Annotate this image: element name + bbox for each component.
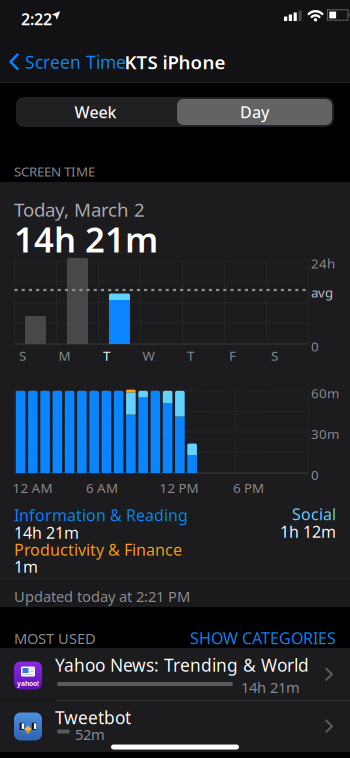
staticText: 52m	[75, 724, 105, 744]
staticText: 0	[311, 466, 319, 484]
staticText: T	[187, 347, 194, 364]
staticText: Week	[74, 101, 116, 123]
staticText: 0	[311, 337, 319, 355]
staticText: F	[229, 347, 236, 364]
staticText: Yahoo News: Trending & World	[55, 653, 309, 676]
staticText: 6 AM	[86, 479, 118, 497]
button[interactable]: yahoo!	[0, 648, 350, 700]
staticText: W	[142, 347, 154, 364]
staticText: 1m	[14, 556, 38, 577]
button[interactable]: Week	[17, 97, 174, 127]
staticText: SCREEN TIME	[14, 162, 95, 180]
staticText: S	[19, 347, 26, 364]
staticText: 24h	[311, 254, 335, 272]
staticText: 14h 21m	[14, 522, 79, 543]
button[interactable]: Back	[9, 51, 126, 73]
staticText: avg	[311, 283, 333, 301]
staticText: T	[103, 347, 110, 364]
button[interactable]: Day	[177, 99, 332, 125]
button[interactable]: SHOW CATEGORIES	[156, 627, 336, 649]
button[interactable]: Tweetbot	[0, 700, 350, 752]
staticText: KTS iPhone	[124, 50, 225, 74]
staticText: 2:22	[21, 8, 52, 30]
staticText: Information & Reading	[14, 504, 188, 526]
staticText: Social	[292, 503, 336, 525]
staticText: SHOW CATEGORIES	[190, 627, 336, 649]
staticText: Day	[240, 101, 269, 123]
staticText: Today, March 2	[14, 197, 145, 222]
staticText: 6 PM	[233, 479, 264, 497]
staticText: Productivity & Finance	[14, 539, 182, 560]
staticText: Tweetbot	[55, 706, 131, 729]
staticText: Updated today at 2:21 PM	[14, 586, 190, 606]
staticText: S	[271, 347, 278, 364]
staticText: 60m	[311, 384, 339, 402]
staticText: 30m	[311, 425, 339, 443]
staticText: 12 PM	[159, 479, 198, 497]
staticText: Screen Time	[25, 50, 126, 73]
staticText: 14h 21m	[241, 677, 300, 697]
staticText: 1h 12m	[280, 521, 336, 542]
staticText: yahoo!	[17, 679, 39, 688]
staticText: M	[58, 347, 70, 364]
staticText: 14h 21m	[14, 216, 158, 262]
staticText: 12 AM	[12, 479, 52, 497]
staticText: MOST USED	[14, 628, 96, 648]
